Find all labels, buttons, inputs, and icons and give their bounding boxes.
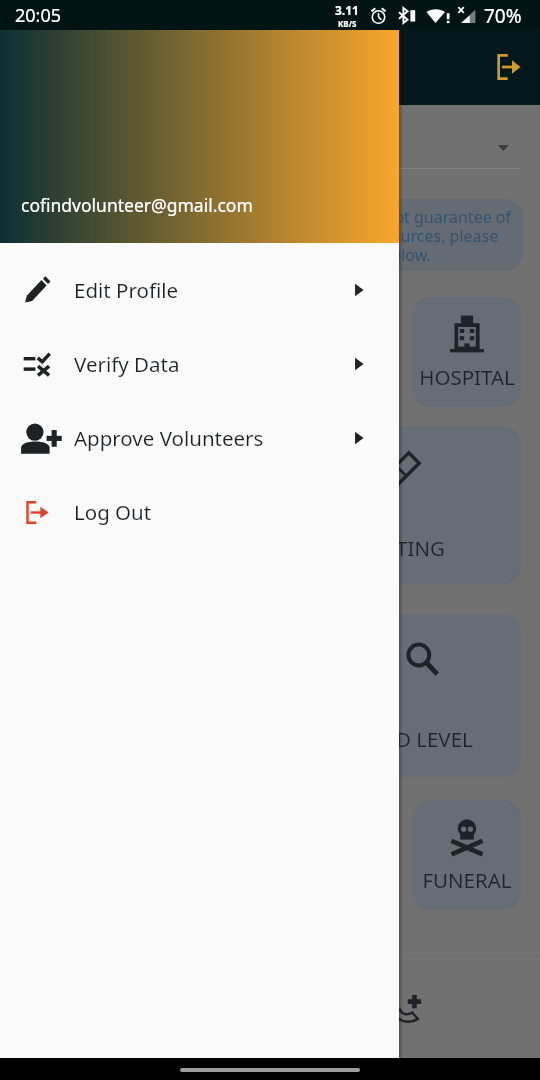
button[interactable]: Log Out — [0, 475, 399, 549]
staticText: KB/S — [338, 18, 357, 29]
button[interactable]: HOSPITAL — [412, 297, 521, 407]
button[interactable]: Add contact — [393, 992, 425, 1024]
button[interactable]: BED LEVEL — [322, 614, 521, 777]
staticText: OXYGEN — [164, 363, 245, 391]
button[interactable]: Approve Volunteers — [0, 401, 399, 475]
staticText: BLOOD BANK — [38, 352, 109, 402]
staticText: cofindvolunteer@gmail.com — [21, 193, 253, 217]
button[interactable]: Edit Profile — [0, 253, 399, 327]
staticText: BED LEVEL — [371, 725, 473, 753]
button[interactable]: OXYGEN — [150, 297, 259, 407]
staticText: 70% — [484, 3, 522, 29]
staticText: TESTING — [362, 534, 445, 562]
button[interactable]: Verify Data — [0, 327, 399, 401]
staticText: This app is not guarantee of all these r… — [301, 206, 512, 265]
button[interactable]: This app is not guarantee of all these r… — [20, 199, 523, 271]
staticText: 20:05 — [15, 3, 62, 28]
staticText: Approve Volunteers — [74, 424, 264, 452]
staticText: HOSPITAL — [419, 363, 515, 391]
button[interactable]: TESTING — [286, 426, 521, 584]
staticText: Log Out — [74, 498, 152, 526]
staticText: MEDICINE — [286, 363, 385, 391]
button[interactable]: FUNERAL — [412, 800, 521, 910]
staticText: 3.11 — [335, 2, 359, 18]
staticText: Select your area — [26, 125, 162, 150]
staticText: FUNERAL — [422, 866, 512, 894]
button[interactable]: AMBULANCE — [19, 426, 253, 584]
button[interactable]: BLOOD BANK — [19, 297, 128, 407]
staticText: Verify Data — [74, 350, 180, 378]
staticText: Edit Profile — [74, 276, 179, 304]
button[interactable]: MEDICINE — [281, 297, 390, 407]
button[interactable]: Log out — [495, 54, 521, 80]
button[interactable]: Select your area — [0, 105, 540, 169]
